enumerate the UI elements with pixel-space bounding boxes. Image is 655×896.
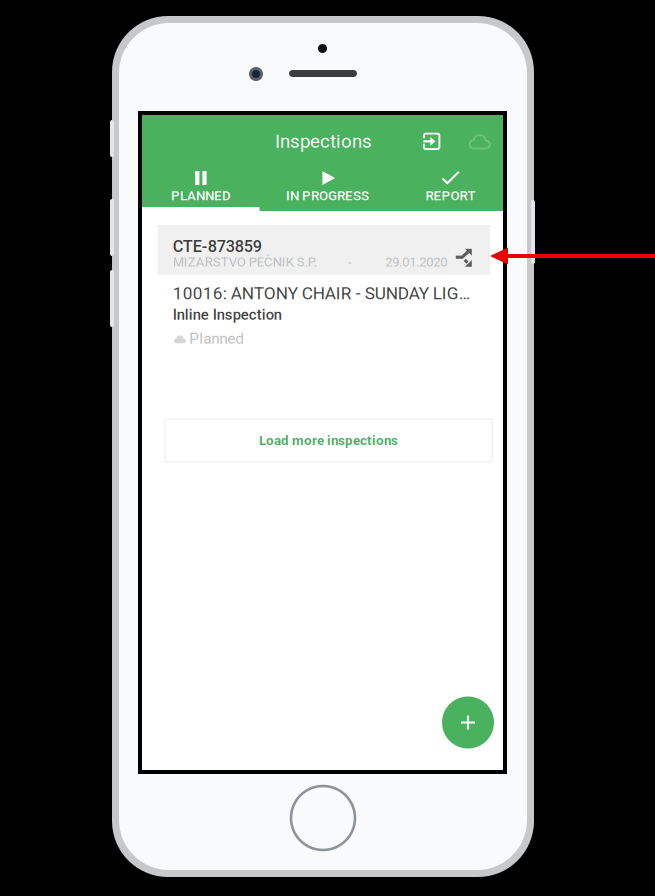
button[interactable]: Add inspection: [442, 696, 494, 748]
staticText: MIZARSTVO PEČNIK S.P.: [173, 254, 317, 270]
button[interactable]: CTE-873859: [158, 225, 490, 354]
staticText: Inline Inspection: [173, 306, 282, 323]
staticText: CTE-873859: [173, 237, 262, 256]
button[interactable]: IN PROGRESS: [269, 156, 387, 210]
button[interactable]: Share inspection: [448, 241, 480, 275]
staticText: REPORT: [426, 188, 476, 204]
staticText: Inspections: [275, 130, 372, 152]
button[interactable]: PLANNED: [142, 156, 260, 210]
staticText: Load more inspections: [259, 433, 398, 448]
button[interactable]: REPORT: [399, 156, 503, 210]
staticText: -: [348, 254, 352, 270]
button[interactable]: Load more inspections: [165, 419, 492, 462]
staticText: 10016: ANTONY CHAIR - SUNDAY LIG…: [173, 283, 471, 303]
button[interactable]: Cloud sync: [460, 127, 499, 157]
staticText: 29.01.2020: [385, 254, 447, 270]
button[interactable]: Sign in: [416, 125, 448, 157]
staticText: IN PROGRESS: [286, 188, 369, 204]
staticText: PLANNED: [171, 188, 231, 204]
staticText: Planned: [189, 329, 244, 347]
